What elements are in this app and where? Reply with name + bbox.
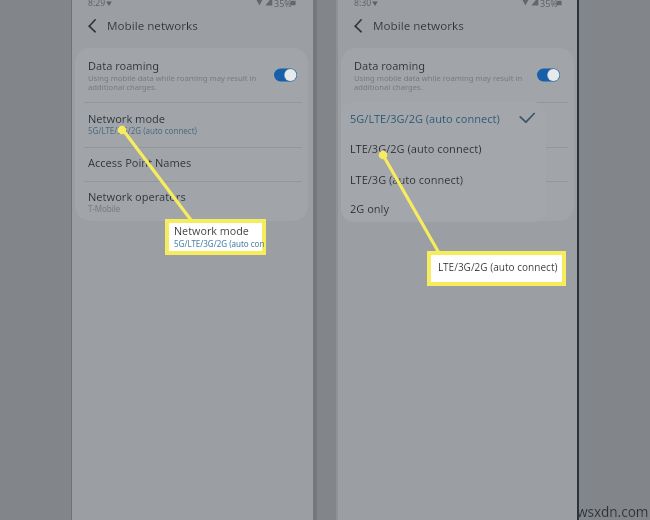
button[interactable]: Network mode	[75, 109, 308, 143]
staticText: Using mobile data while roaming may resu…	[88, 73, 257, 92]
button[interactable]: 2G only	[341, 198, 546, 222]
button[interactable]: Data roaming	[75, 48, 308, 101]
staticText: Data roaming	[88, 58, 160, 73]
staticText: Network mode	[174, 224, 249, 239]
button[interactable]: Network mode	[341, 109, 574, 143]
staticText: 35%	[274, 0, 292, 9]
staticText: Network mode	[354, 111, 432, 126]
staticText: Data roaming	[354, 58, 426, 73]
button[interactable]: LTE/3G/2G (auto connect)	[341, 138, 546, 164]
staticText: Access Point Names	[88, 155, 192, 170]
button[interactable]: Data roaming	[341, 48, 574, 101]
staticText: 2G only	[350, 201, 390, 216]
staticText: LTE/3G/2G (auto connect)	[438, 260, 558, 274]
staticText: Using mobile data while roaming may resu…	[354, 73, 523, 92]
staticText: 5G/LTE/3G/2G (auto con	[174, 238, 265, 249]
button[interactable]: Back	[344, 12, 373, 39]
button[interactable]: Back	[78, 12, 107, 39]
staticText: 5G/LTE/3G/2G (auto connect)	[350, 111, 500, 126]
button[interactable]: 5G/LTE/3G/2G (auto connect)	[341, 108, 546, 134]
button[interactable]: Data roaming toggle	[274, 68, 297, 82]
staticText: LTE/3G/2G (auto connect)	[350, 141, 482, 156]
staticText: 35%	[540, 0, 558, 9]
staticText: Mobile networks	[373, 18, 464, 34]
button[interactable]: Network operators	[75, 187, 308, 221]
button[interactable]: Data roaming toggle	[537, 68, 560, 82]
staticText: Network mode	[88, 111, 166, 126]
staticText: T-Mobile	[88, 203, 121, 214]
staticText: Access Point Names	[354, 155, 458, 170]
staticText: 8:30	[354, 0, 372, 9]
staticText: Mobile networks	[107, 18, 198, 34]
staticText: 5G/LTE/3G/2G (auto connect)	[88, 125, 197, 136]
button[interactable]: Access Point Names	[75, 153, 308, 187]
button[interactable]: LTE/3G (auto connect)	[341, 169, 546, 195]
button[interactable]: Network operators	[341, 187, 574, 221]
button[interactable]: Access Point Names	[341, 153, 574, 187]
staticText: LTE/3G (auto connect)	[350, 172, 464, 187]
staticText: 8:29	[88, 0, 106, 9]
staticText: wsxdn.com	[577, 503, 649, 520]
staticText: T-Mobile	[354, 203, 387, 214]
staticText: Network operators	[88, 189, 186, 204]
staticText: Network operators	[354, 189, 452, 204]
